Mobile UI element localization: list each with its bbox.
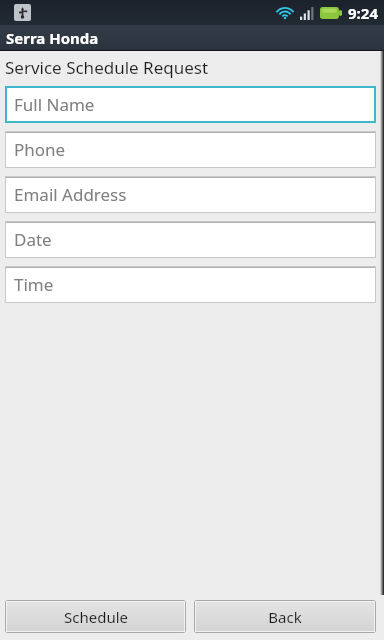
staticText: Schedule	[64, 607, 128, 627]
staticText: Email Address	[14, 183, 127, 206]
staticText: 9:24	[348, 3, 378, 23]
staticText: Serra Honda	[6, 28, 99, 48]
button[interactable]: Date	[5, 221, 376, 258]
button[interactable]: Email Address	[5, 176, 376, 213]
staticText: Full Name	[14, 93, 95, 116]
staticText: Back	[268, 607, 302, 627]
staticText: Time	[14, 273, 54, 296]
button[interactable]: Phone	[5, 131, 376, 168]
button[interactable]: Full Name	[5, 86, 376, 123]
staticText: Service Schedule Request	[5, 56, 209, 79]
staticText: Date	[14, 228, 52, 251]
button[interactable]: Time	[5, 266, 376, 303]
button[interactable]: Schedule	[7, 602, 184, 631]
staticText: Phone	[14, 138, 66, 161]
button[interactable]: Back	[196, 602, 374, 631]
